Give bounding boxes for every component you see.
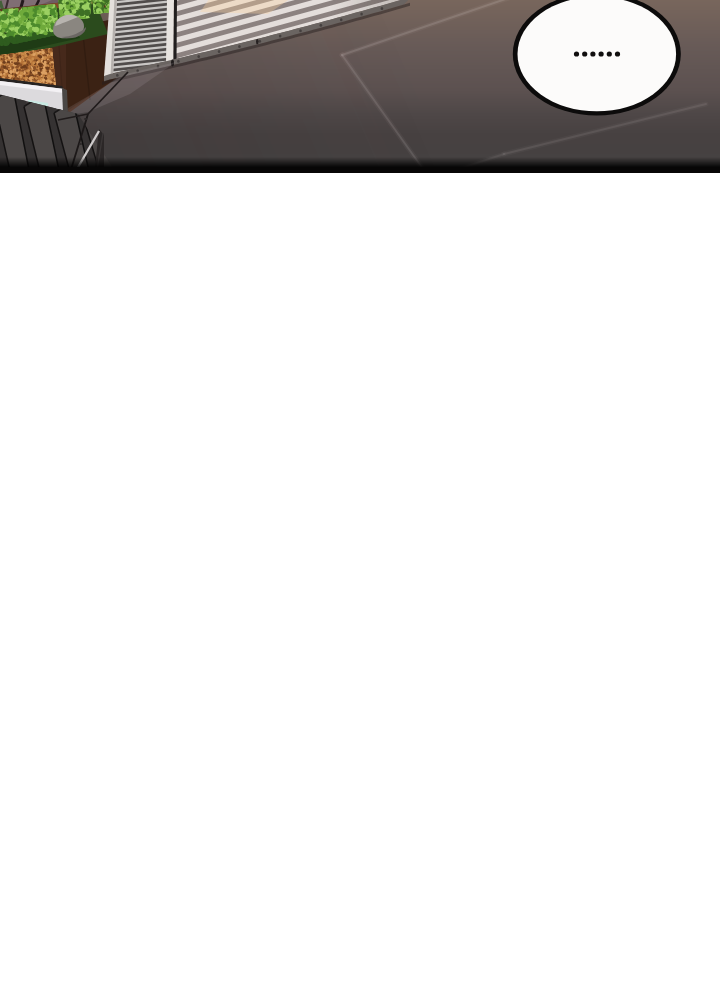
button[interactable]: Comic panel image: [0, 0, 720, 173]
